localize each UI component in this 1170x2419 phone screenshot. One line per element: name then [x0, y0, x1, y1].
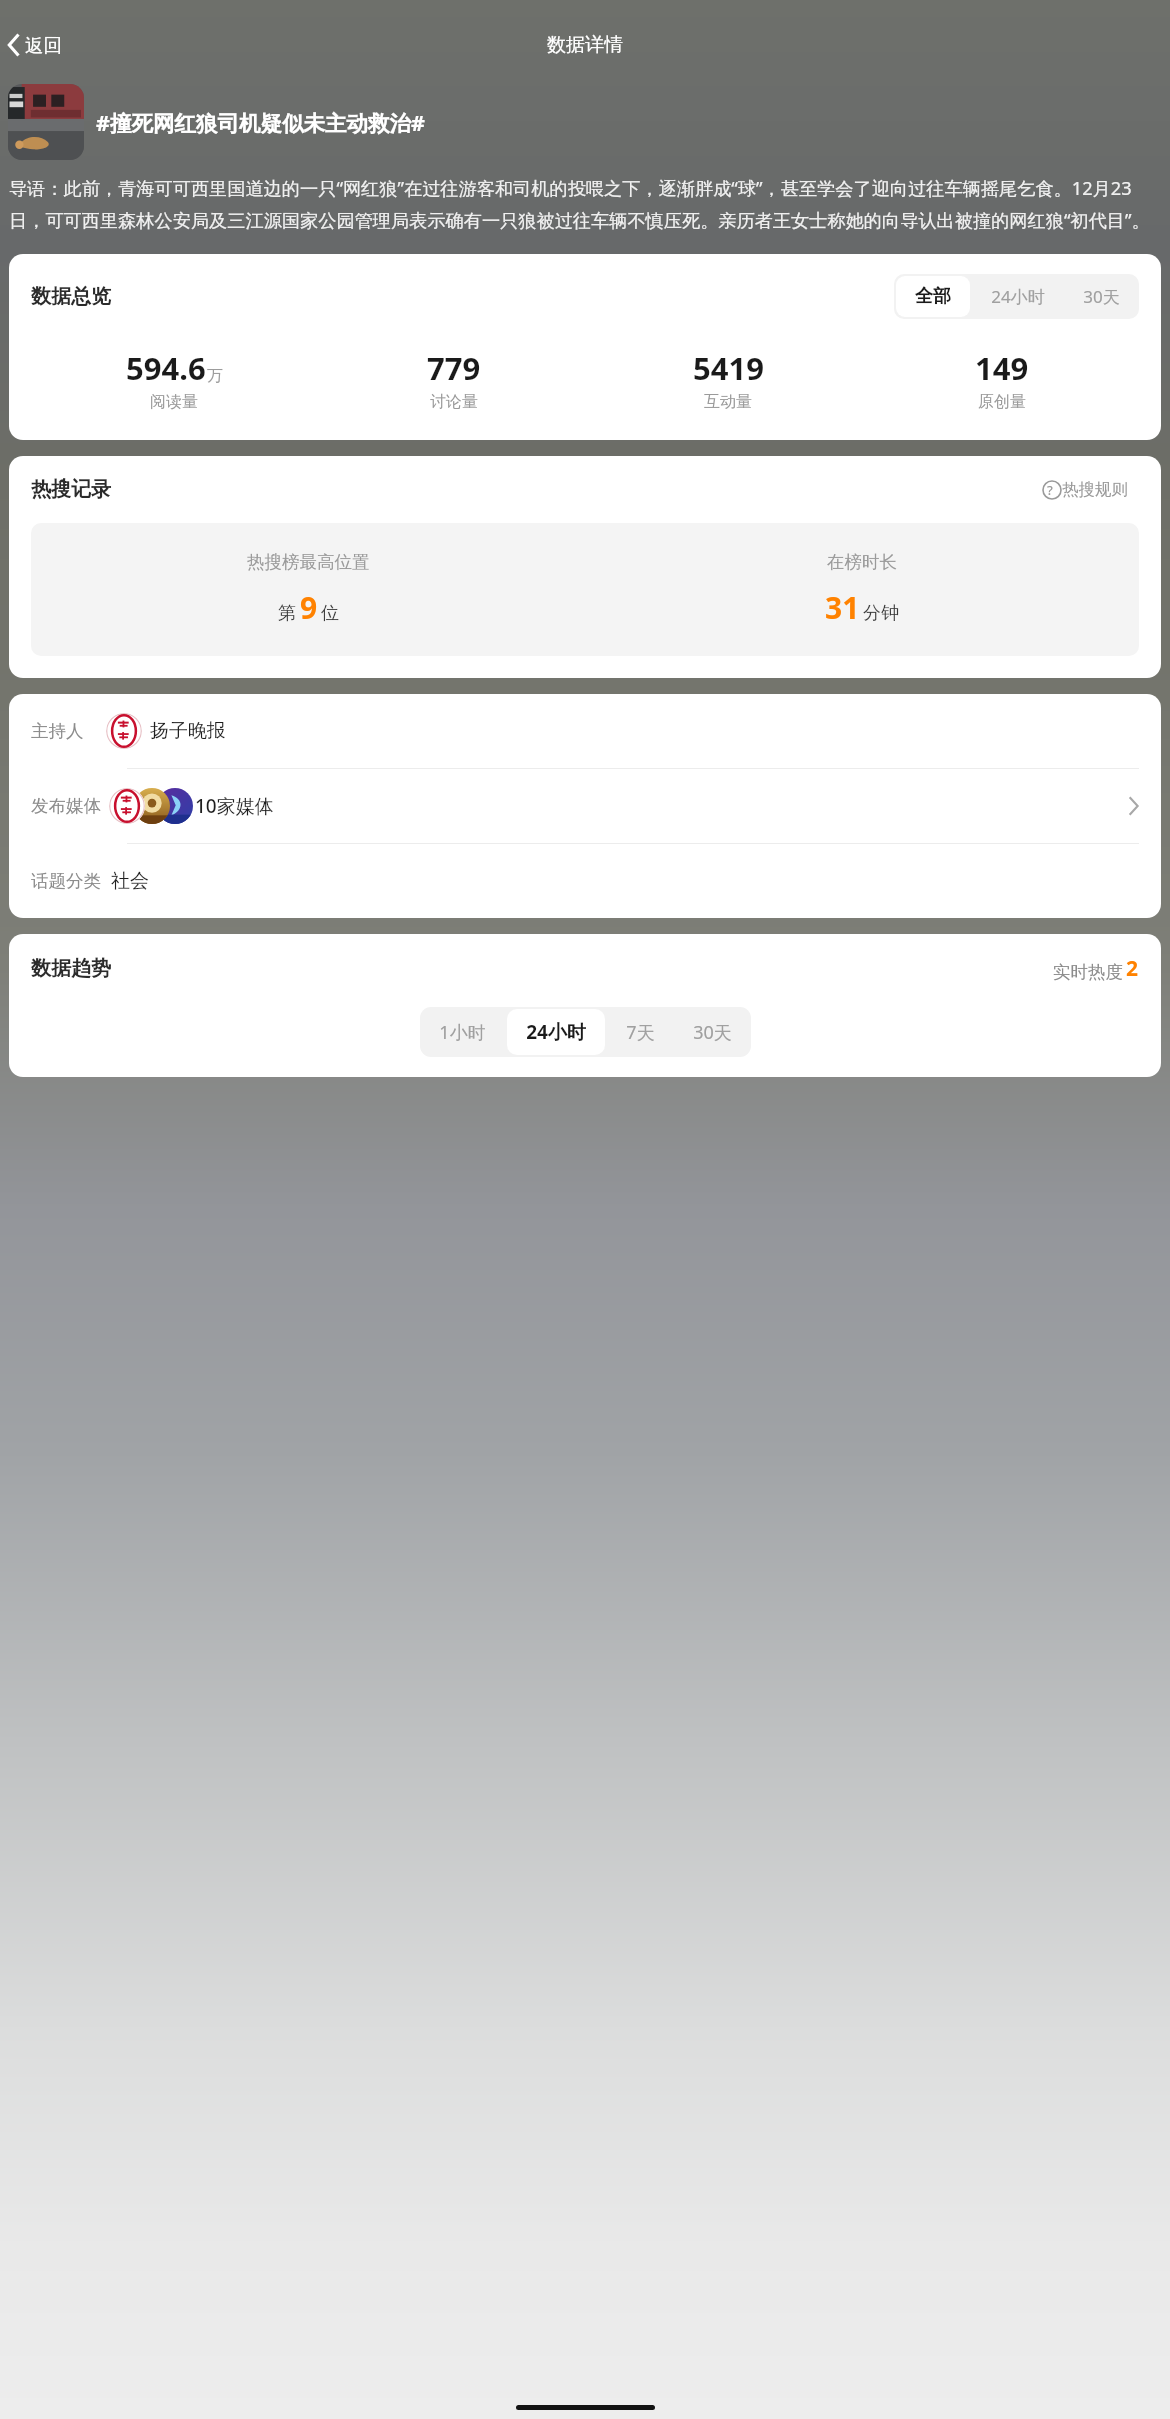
button[interactable]: 149	[865, 347, 1139, 412]
staticText: 数据趋势	[31, 956, 111, 981]
button[interactable]: 在榜时长	[585, 551, 1139, 628]
button[interactable]: 5419	[591, 347, 865, 412]
button[interactable]: 24小时	[972, 274, 1064, 319]
button[interactable]: 30天	[674, 1008, 751, 1057]
staticText: 话题分类	[31, 870, 101, 892]
staticText: 热搜记录	[31, 477, 111, 502]
button[interactable]: 热搜榜最高位置	[31, 551, 585, 628]
staticText: 导语：此前，青海可可西里国道边的一只“网红狼”在过往游客和司机的投喂之下，逐渐胖…	[9, 176, 1161, 232]
staticText: 2	[1126, 954, 1139, 983]
staticText: 分钟	[863, 602, 899, 625]
button[interactable]: 779	[317, 347, 591, 412]
staticText: 发布媒体	[31, 795, 101, 817]
button[interactable]: 594.6	[31, 347, 317, 412]
staticText: 热搜榜最高位置	[247, 551, 370, 573]
staticText: 第	[278, 602, 296, 625]
staticText: 讨论量	[430, 392, 478, 412]
staticText: 10家媒体	[195, 793, 274, 819]
staticText: #撞死网红狼司机疑似未主动救治#	[96, 108, 425, 137]
staticText: 主持人	[31, 720, 84, 742]
staticText: 594.6	[126, 347, 206, 389]
staticText: 779	[427, 347, 481, 389]
button[interactable]: 话题配图	[8, 84, 84, 160]
staticText: 31	[825, 587, 860, 628]
button[interactable]: 7天	[607, 1008, 674, 1057]
staticText: 5419	[693, 347, 764, 389]
button[interactable]: 30天	[1064, 274, 1139, 319]
button[interactable]: 发布媒体	[31, 769, 1139, 843]
staticText: 30天	[1083, 285, 1120, 308]
staticText: 万	[207, 366, 223, 386]
staticText: 30天	[693, 1020, 732, 1045]
staticText: 数据详情	[547, 33, 623, 57]
staticText: 位	[321, 602, 339, 625]
staticText: 热搜规则	[1062, 479, 1128, 500]
button[interactable]: ?	[1039, 476, 1139, 503]
staticText: 在榜时长	[827, 551, 897, 573]
button[interactable]: 返回	[0, 29, 70, 61]
staticText: 实时热度	[1053, 961, 1123, 983]
staticText: 1小时	[439, 1020, 486, 1045]
staticText: 原创量	[978, 392, 1026, 412]
button[interactable]: 话题分类	[31, 844, 1139, 918]
staticText: 9	[300, 587, 318, 628]
staticText: 7天	[626, 1020, 655, 1045]
other: 查看媒体列表	[1128, 796, 1139, 816]
button[interactable]: 主持人	[31, 694, 1139, 768]
button[interactable]: 24小时	[507, 1009, 605, 1055]
staticText: 149	[975, 347, 1029, 389]
button[interactable]: 全部	[896, 276, 970, 317]
staticText: 互动量	[704, 392, 752, 412]
staticText: 全部	[915, 285, 951, 308]
staticText: 扬子晚报	[150, 719, 226, 743]
staticText: 阅读量	[150, 392, 198, 412]
staticText: 数据总览	[31, 284, 111, 309]
staticText: ?	[1047, 481, 1053, 499]
button[interactable]: 1小时	[420, 1008, 505, 1057]
staticText: 社会	[111, 869, 149, 893]
staticText: 24小时	[526, 1019, 586, 1045]
staticText: 24小时	[991, 285, 1045, 308]
staticText: 返回	[25, 34, 62, 57]
